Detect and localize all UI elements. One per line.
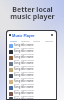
staticText: Song title name (14, 85, 34, 89)
staticText: Artist - Album name (14, 95, 34, 97)
staticText: Song title name (14, 49, 34, 53)
staticText: Songs (10, 39, 17, 42)
staticText: Artist - Album name (14, 83, 34, 85)
staticText: Song title name (14, 91, 34, 95)
staticText: Music Player (12, 33, 35, 38)
staticText: Song title name (14, 61, 34, 65)
staticText: Artist - Album name (14, 53, 34, 55)
staticText: Song title name (14, 79, 34, 83)
staticText: Artist - Album name (14, 77, 34, 79)
staticText: Better local music player (10, 5, 55, 21)
staticText: Artist - Album name (14, 65, 34, 67)
staticText: Song title name (14, 73, 34, 77)
staticText: Albums (21, 39, 30, 42)
staticText: Song title name (14, 67, 34, 71)
staticText: Song title name (14, 55, 34, 59)
staticText: Song title name (14, 97, 34, 99)
staticText: Artist - Album name (14, 71, 34, 73)
staticText: Artist - Album name (14, 47, 34, 49)
staticText: Genres (45, 39, 53, 42)
staticText: Artist - Album name (14, 89, 34, 91)
staticText: Artists (33, 39, 41, 42)
staticText: Song title name (14, 43, 34, 47)
staticText: Artist - Album name (14, 59, 34, 61)
